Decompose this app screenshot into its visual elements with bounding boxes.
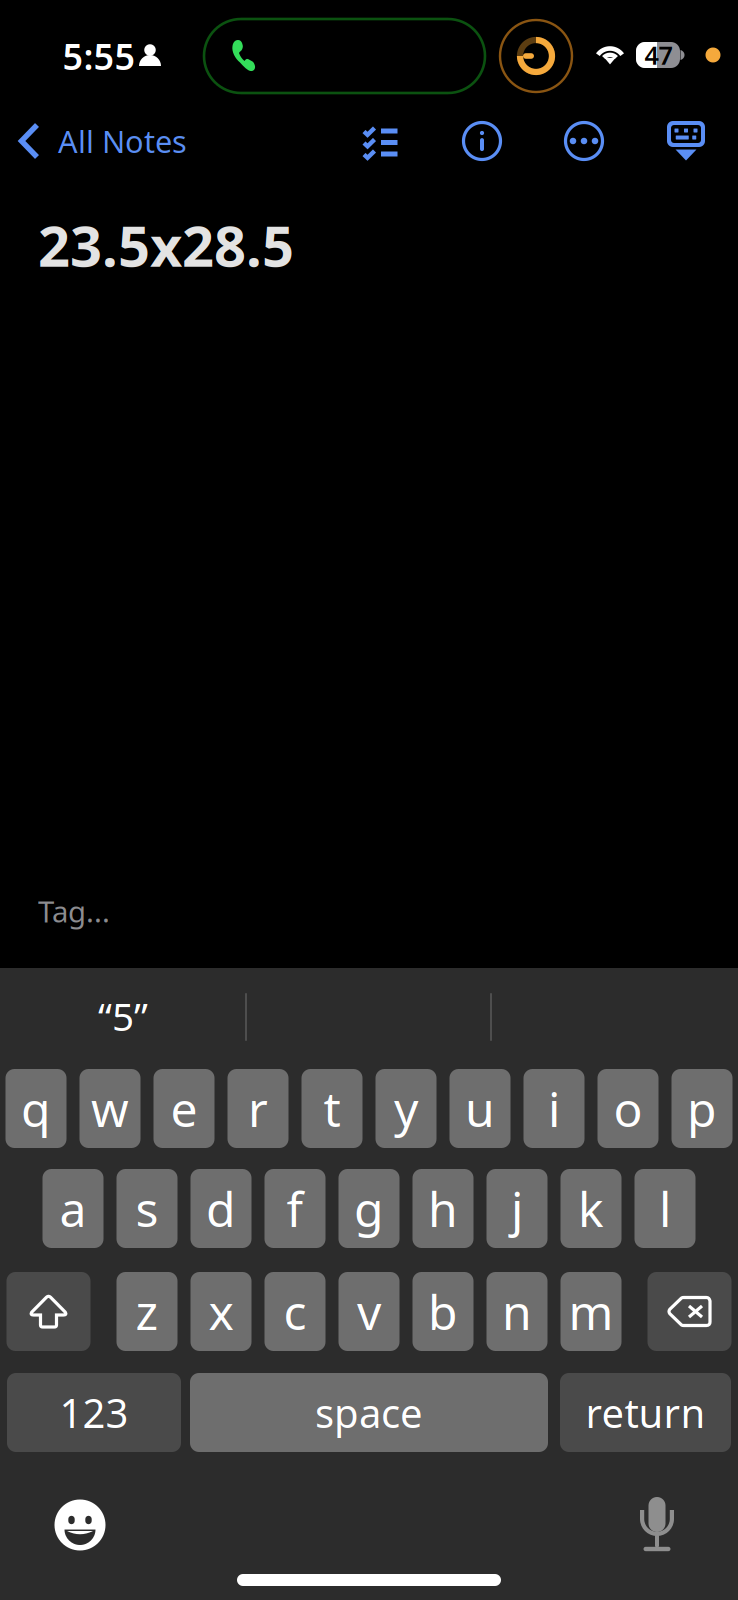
staticText: d	[206, 1177, 236, 1240]
staticText: j	[511, 1177, 523, 1240]
staticText: Tag...	[38, 891, 110, 930]
button[interactable]: x	[190, 1272, 251, 1351]
staticText: l	[659, 1177, 671, 1240]
staticText: z	[135, 1280, 158, 1343]
button[interactable]: k	[560, 1169, 621, 1248]
button[interactable]: v	[338, 1272, 399, 1351]
button[interactable]: Dictation	[629, 1493, 685, 1557]
button[interactable]: Delete	[647, 1272, 731, 1351]
button[interactable]: j	[486, 1169, 547, 1248]
staticText: e	[170, 1077, 197, 1140]
button[interactable]: o	[597, 1069, 658, 1148]
staticText: r	[248, 1077, 268, 1140]
button[interactable]: space	[190, 1373, 548, 1452]
button[interactable]: a	[42, 1169, 103, 1248]
button[interactable]: Shift	[6, 1272, 90, 1351]
button[interactable]: All Notes	[18, 113, 268, 169]
staticText: “5”	[98, 990, 148, 1042]
staticText: o	[613, 1077, 642, 1140]
staticText: k	[578, 1177, 604, 1240]
button[interactable]: w	[79, 1069, 140, 1148]
staticText: c	[283, 1280, 306, 1343]
staticText: w	[91, 1077, 129, 1140]
button[interactable]: Checklist	[352, 113, 410, 169]
staticText: s	[135, 1177, 158, 1240]
staticText: a	[59, 1177, 86, 1240]
staticText: n	[502, 1280, 532, 1343]
staticText: x	[208, 1280, 233, 1343]
staticText: space	[315, 1386, 423, 1439]
staticText: p	[687, 1077, 717, 1140]
button[interactable]: e	[153, 1069, 214, 1148]
staticText: 5:55	[62, 32, 135, 80]
button[interactable]: b	[412, 1272, 473, 1351]
staticText: y	[394, 1077, 418, 1140]
button[interactable]: y	[375, 1069, 436, 1148]
button[interactable]: Hide keyboard	[657, 113, 715, 169]
staticText: u	[465, 1077, 495, 1140]
staticText: 123	[59, 1386, 128, 1439]
staticText: All Notes	[58, 121, 187, 161]
button[interactable]: Emoji keyboard	[48, 1493, 112, 1557]
staticText: t	[323, 1077, 340, 1140]
staticText: v	[357, 1280, 381, 1343]
button[interactable]: t	[301, 1069, 362, 1148]
button[interactable]: n	[486, 1272, 547, 1351]
button[interactable]: z	[116, 1272, 177, 1351]
button[interactable]: u	[449, 1069, 510, 1148]
button[interactable]: g	[338, 1169, 399, 1248]
staticText: g	[354, 1177, 384, 1240]
staticText: h	[428, 1177, 458, 1240]
staticText: return	[585, 1386, 705, 1439]
button[interactable]: l	[634, 1169, 695, 1248]
button[interactable]: s	[116, 1169, 177, 1248]
button[interactable]: 123	[7, 1373, 181, 1452]
staticText: q	[21, 1077, 51, 1140]
button[interactable]: More options	[555, 113, 613, 169]
button[interactable]: m	[560, 1272, 621, 1351]
staticText: f	[286, 1177, 303, 1240]
button[interactable]: p	[671, 1069, 732, 1148]
button[interactable]: Note info	[453, 113, 511, 169]
staticText: b	[428, 1280, 458, 1343]
button[interactable]: d	[190, 1169, 251, 1248]
button[interactable]: q	[5, 1069, 66, 1148]
button[interactable]: return	[560, 1373, 731, 1452]
button[interactable]: f	[264, 1169, 325, 1248]
staticText: i	[548, 1077, 560, 1140]
staticText: 23.5x28.5	[38, 208, 294, 282]
staticText: 47	[644, 38, 672, 72]
staticText: m	[568, 1280, 613, 1343]
button[interactable]: i	[523, 1069, 584, 1148]
button[interactable]: h	[412, 1169, 473, 1248]
button[interactable]: c	[264, 1272, 325, 1351]
button[interactable]: r	[227, 1069, 288, 1148]
